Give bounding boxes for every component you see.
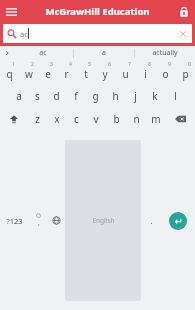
staticText: 1: [12, 61, 15, 68]
staticText: 3: [50, 61, 53, 68]
button[interactable]: 4: [57, 60, 76, 84]
staticText: 5: [88, 61, 91, 68]
staticText: j: [134, 89, 137, 103]
staticText: 8: [148, 61, 151, 68]
button[interactable]: a: [74, 46, 134, 60]
staticText: a: [102, 48, 106, 58]
staticText: x: [54, 112, 60, 126]
button[interactable]: v: [86, 107, 106, 131]
button[interactable]: ac: [13, 46, 73, 60]
staticText: o: [162, 67, 169, 81]
button[interactable]: 5: [76, 60, 95, 84]
staticText: ac: [39, 48, 47, 58]
staticText: d: [53, 89, 60, 103]
button[interactable]: Emoji: [29, 131, 47, 310]
button[interactable]: Clear: [174, 25, 191, 42]
button[interactable]: Lock: [172, 0, 195, 23]
button[interactable]: c: [66, 107, 86, 131]
button[interactable]: 1: [0, 60, 19, 84]
staticText: ac: [20, 29, 28, 39]
button[interactable]: l: [165, 84, 185, 107]
staticText: g: [92, 89, 99, 103]
staticText: l: [174, 89, 177, 103]
button[interactable]: h: [105, 84, 125, 107]
staticText: e: [45, 67, 51, 81]
staticText: 6: [108, 61, 111, 68]
staticText: p: [182, 67, 189, 81]
staticText: n: [133, 112, 140, 126]
staticText: 0: [188, 61, 191, 68]
button[interactable]: k: [145, 84, 165, 107]
staticText: u: [122, 67, 129, 81]
button[interactable]: f: [66, 84, 85, 107]
staticText: v: [93, 112, 99, 126]
button[interactable]: d: [47, 84, 66, 107]
button[interactable]: n: [126, 107, 146, 131]
button[interactable]: m: [146, 107, 166, 131]
staticText: z: [35, 112, 40, 126]
button[interactable]: More suggestions: [0, 46, 13, 60]
button[interactable]: Change language: [47, 131, 65, 310]
button[interactable]: a: [9, 84, 28, 107]
staticText: f: [74, 89, 78, 103]
staticText: a: [16, 89, 22, 103]
button[interactable]: ?123: [0, 131, 29, 310]
button[interactable]: Enter: [169, 212, 187, 230]
staticText: actually: [152, 48, 178, 58]
staticText: m: [151, 112, 161, 126]
staticText: ?123: [6, 216, 23, 226]
button[interactable]: 7: [115, 60, 135, 84]
staticText: 9: [168, 61, 171, 68]
staticText: 7: [128, 61, 131, 68]
staticText: h: [112, 89, 119, 103]
button[interactable]: 3: [38, 60, 57, 84]
button[interactable]: Backspace: [166, 107, 195, 131]
button[interactable]: Menu: [0, 0, 23, 23]
button[interactable]: x: [47, 107, 66, 131]
staticText: McGrawHill Education: [45, 5, 150, 18]
staticText: ,: [38, 218, 40, 228]
button[interactable]: z: [28, 107, 47, 131]
staticText: English: [92, 216, 115, 225]
button[interactable]: Shift: [0, 107, 28, 131]
staticText: q: [6, 67, 13, 81]
staticText: y: [102, 67, 108, 81]
staticText: b: [113, 112, 120, 126]
staticText: 2: [31, 61, 34, 68]
button[interactable]: 8: [135, 60, 155, 84]
button[interactable]: s: [28, 84, 47, 107]
button[interactable]: b: [106, 107, 126, 131]
button[interactable]: actually: [135, 46, 195, 60]
button[interactable]: j: [125, 84, 145, 107]
staticText: c: [74, 112, 79, 126]
button[interactable]: 0: [175, 60, 195, 84]
button[interactable]: 6: [95, 60, 115, 84]
staticText: i: [144, 67, 147, 81]
button[interactable]: 9: [155, 60, 175, 84]
staticText: k: [152, 89, 158, 103]
staticText: w: [25, 67, 33, 81]
button[interactable]: 2: [19, 60, 38, 84]
staticText: s: [35, 89, 40, 103]
staticText: 4: [69, 61, 72, 68]
staticText: .: [150, 215, 153, 226]
button[interactable]: g: [85, 84, 105, 107]
button[interactable]: ac: [3, 24, 192, 43]
staticText: t: [84, 67, 88, 81]
staticText: r: [64, 67, 69, 81]
